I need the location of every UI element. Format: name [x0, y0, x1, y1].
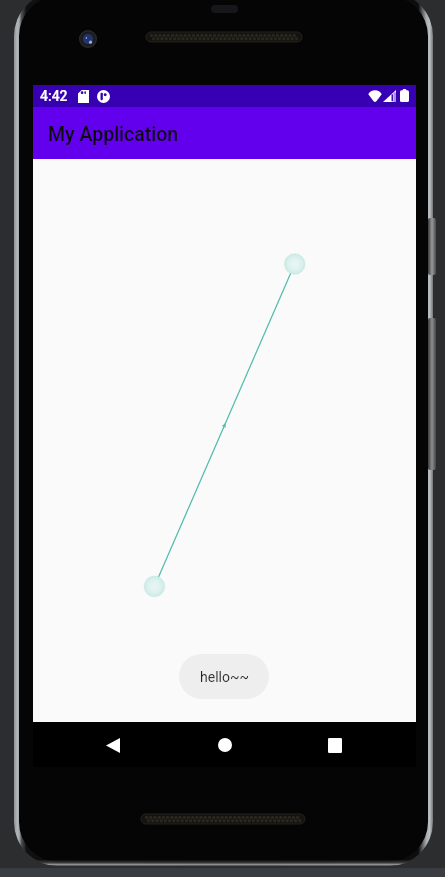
staticText: hello~~ [200, 669, 249, 685]
button[interactable]: Home [197, 723, 253, 767]
button[interactable]: Recent apps [307, 723, 363, 767]
button[interactable]: hello~~ [179, 654, 269, 699]
button[interactable]: Back [85, 723, 141, 767]
staticText: 4:42 [40, 88, 68, 104]
staticText: My Application [48, 123, 179, 146]
